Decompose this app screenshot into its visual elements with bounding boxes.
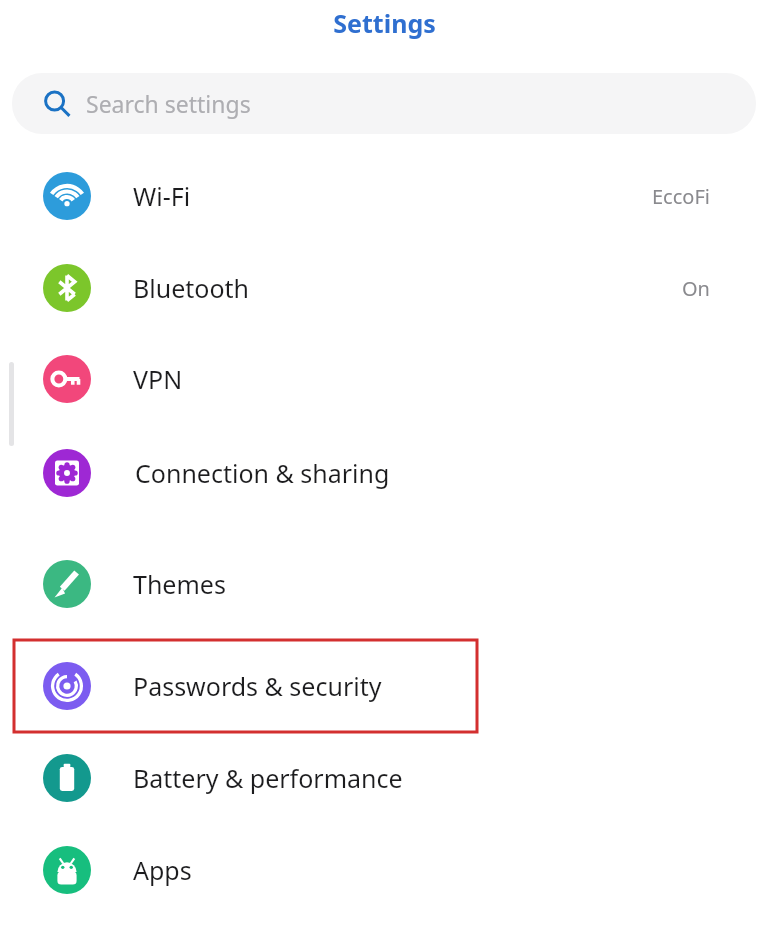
button[interactable]: Apps [0,824,768,916]
button[interactable]: Passwords & security [0,640,768,732]
button[interactable]: Connection & sharing [0,427,768,519]
staticText: Bluetooth [133,271,250,305]
staticText: Themes [133,567,226,601]
staticText: Apps [133,853,192,887]
button[interactable]: Search settings [12,73,756,134]
staticText: Search settings [86,88,251,119]
button[interactable]: Bluetooth [0,242,768,334]
staticText: Battery & performance [133,761,403,795]
button[interactable]: Themes [0,538,768,630]
staticText: Passwords & security [133,669,382,703]
button[interactable]: Wi-Fi [0,150,768,242]
staticText: Connection & sharing [135,456,390,490]
staticText: VPN [133,362,183,396]
staticText: EccoFi [652,183,710,210]
staticText: Wi-Fi [133,179,191,213]
button[interactable]: Battery & performance [0,732,768,824]
staticText: Settings [333,6,436,40]
staticText: On [682,275,710,302]
button[interactable]: VPN [0,333,768,425]
